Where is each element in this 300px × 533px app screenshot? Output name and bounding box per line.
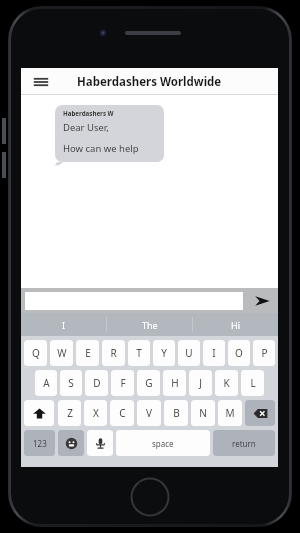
staticText: M xyxy=(225,406,235,420)
staticText: 123 xyxy=(33,438,47,449)
staticText: L xyxy=(250,376,256,390)
button[interactable]: T xyxy=(128,340,150,366)
button[interactable]: I xyxy=(203,340,225,366)
staticText: D xyxy=(93,376,101,390)
staticText: O xyxy=(235,346,243,360)
button[interactable]: P xyxy=(253,340,275,366)
button[interactable]: Open navigation menu xyxy=(31,72,51,92)
button[interactable]: G xyxy=(137,370,160,396)
button[interactable]: return xyxy=(213,430,275,456)
button[interactable]: Voice input xyxy=(87,430,113,456)
button[interactable]: F xyxy=(111,370,134,396)
staticText: E xyxy=(85,346,91,360)
button[interactable]: D xyxy=(85,370,108,396)
staticText: Haberdashers W xyxy=(63,109,114,117)
button[interactable]: Shift xyxy=(24,400,54,426)
staticText: I xyxy=(62,319,66,331)
staticText: Dear User, xyxy=(63,121,109,134)
button[interactable]: Z xyxy=(58,400,81,426)
button[interactable]: E xyxy=(76,340,99,366)
staticText: space xyxy=(152,438,174,449)
button[interactable]: Send xyxy=(252,291,272,311)
staticText: B xyxy=(173,406,180,420)
staticText: U xyxy=(185,346,193,360)
staticText: Hi xyxy=(231,319,240,331)
button[interactable]: Y xyxy=(153,340,175,366)
button[interactable]: Emoji xyxy=(58,430,84,456)
button[interactable]: Q xyxy=(24,340,47,366)
button[interactable]: K xyxy=(215,370,238,396)
staticText: Haberdashers Worldwide xyxy=(77,74,222,90)
staticText: Z xyxy=(67,406,73,420)
button[interactable]: N xyxy=(191,400,215,426)
button[interactable]: S xyxy=(60,370,82,396)
staticText: H xyxy=(171,376,179,390)
staticText: X xyxy=(93,406,99,420)
button[interactable]: J xyxy=(189,370,212,396)
button[interactable]: B xyxy=(164,400,188,426)
staticText: W xyxy=(57,346,67,360)
staticText: R xyxy=(110,346,117,360)
staticText: Q xyxy=(32,346,40,360)
button[interactable]: 123 xyxy=(24,430,55,456)
button[interactable]: R xyxy=(102,340,125,366)
button[interactable]: H xyxy=(163,370,186,396)
staticText: P xyxy=(261,346,268,360)
staticText: V xyxy=(146,406,152,420)
button[interactable]: X xyxy=(84,400,107,426)
button[interactable]: The xyxy=(107,313,192,336)
staticText: return xyxy=(232,438,256,449)
button[interactable]: I xyxy=(21,313,106,336)
staticText: G xyxy=(145,376,153,390)
staticText: F xyxy=(120,376,126,390)
staticText: C xyxy=(119,406,126,420)
button[interactable]: M xyxy=(218,400,242,426)
button[interactable]: V xyxy=(137,400,161,426)
button[interactable]: space xyxy=(116,430,210,456)
staticText: I xyxy=(212,346,216,360)
staticText: N xyxy=(199,406,207,420)
staticText: The xyxy=(142,319,158,331)
staticText: Y xyxy=(161,346,167,360)
staticText: J xyxy=(199,376,202,390)
staticText: S xyxy=(68,376,74,390)
staticText: A xyxy=(43,376,50,390)
button[interactable]: W xyxy=(50,340,73,366)
staticText: T xyxy=(136,346,142,360)
button[interactable]: Hi xyxy=(193,313,278,336)
button[interactable]: O xyxy=(228,340,250,366)
button[interactable]: Backspace xyxy=(245,400,275,426)
staticText: How can we help you ? xyxy=(63,142,160,155)
button[interactable]: C xyxy=(110,400,134,426)
staticText: K xyxy=(223,376,230,390)
button[interactable]: L xyxy=(241,370,264,396)
button[interactable]: A xyxy=(35,370,57,396)
button[interactable]: U xyxy=(178,340,200,366)
